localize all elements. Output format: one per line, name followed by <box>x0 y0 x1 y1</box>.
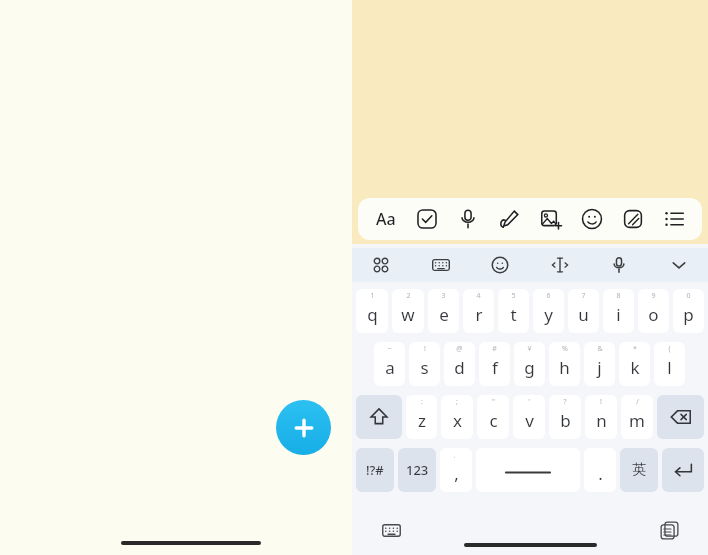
staticText: / <box>636 397 639 407</box>
staticText: o <box>648 303 659 326</box>
button[interactable]: " <box>477 395 509 439</box>
button[interactable]: Voice <box>451 202 485 236</box>
button[interactable]: Shift <box>356 395 402 439</box>
staticText: . <box>598 462 603 485</box>
staticText: v <box>525 409 534 432</box>
button[interactable]: List <box>657 202 691 236</box>
button[interactable]: : <box>406 395 437 439</box>
button[interactable]: / <box>621 395 653 439</box>
button[interactable]: Add <box>276 400 331 455</box>
staticText: a <box>385 356 395 379</box>
staticText: & <box>597 344 603 354</box>
button[interactable]: 7 <box>568 289 599 333</box>
button[interactable]: Draw <box>492 202 526 236</box>
button[interactable]: Emoji <box>575 202 609 236</box>
button[interactable]: Voice input <box>604 250 634 280</box>
staticText: # <box>492 344 497 354</box>
staticText: p <box>683 303 694 326</box>
staticText: m <box>629 409 645 432</box>
staticText: ! <box>600 397 602 407</box>
button[interactable]: ! <box>585 395 617 439</box>
staticText: w <box>401 303 415 326</box>
button[interactable]: Clipboard <box>654 515 684 545</box>
button[interactable]: 0 <box>673 289 704 333</box>
button[interactable]: Photo <box>534 202 568 236</box>
staticText: n <box>596 409 607 432</box>
staticText: @ <box>456 344 463 354</box>
button[interactable]: ; <box>441 395 473 439</box>
staticText: ' <box>528 397 530 407</box>
staticText: 9 <box>651 291 656 301</box>
button[interactable]: % <box>549 342 580 386</box>
button[interactable]: Apps <box>366 250 396 280</box>
button[interactable]: * <box>619 342 650 386</box>
staticText: x <box>453 409 462 432</box>
button[interactable]: 6 <box>533 289 564 333</box>
staticText: e <box>439 303 449 326</box>
button[interactable]: ? <box>549 395 581 439</box>
button[interactable]: . <box>584 448 616 492</box>
button[interactable]: Hide keyboard <box>664 250 694 280</box>
staticText: 英 <box>632 461 646 479</box>
staticText: 5 <box>511 291 516 301</box>
button[interactable]: Space <box>476 448 580 492</box>
staticText: t <box>510 303 517 326</box>
button[interactable]: 英 <box>620 448 658 492</box>
staticText: ! <box>424 344 426 354</box>
button[interactable]: Keyboard layout <box>426 250 456 280</box>
button[interactable]: 2 <box>392 289 424 333</box>
button[interactable]: !?# <box>356 448 394 492</box>
staticText: Aa <box>376 208 396 230</box>
staticText: q <box>367 303 378 326</box>
button[interactable]: 4 <box>463 289 494 333</box>
staticText: 2 <box>406 291 411 301</box>
button[interactable]: Checklist <box>410 202 444 236</box>
staticText: d <box>454 356 465 379</box>
staticText: " <box>492 397 495 407</box>
button[interactable]: ' <box>513 395 545 439</box>
button[interactable]: 123 <box>398 448 436 492</box>
button[interactable]: & <box>584 342 615 386</box>
button[interactable]: 、 <box>440 448 472 492</box>
button[interactable]: Text edit <box>545 250 575 280</box>
button[interactable]: Enter <box>662 448 704 492</box>
staticText: f <box>492 356 498 379</box>
staticText: 4 <box>476 291 481 301</box>
staticText: z <box>418 409 426 432</box>
staticText: ; <box>456 397 458 407</box>
staticText: u <box>578 303 589 326</box>
button[interactable]: 3 <box>428 289 459 333</box>
button[interactable]: ! <box>409 342 440 386</box>
staticText: 123 <box>406 461 429 479</box>
staticText: l <box>667 356 672 379</box>
staticText: s <box>420 356 429 379</box>
staticText: r <box>475 303 483 326</box>
staticText: 8 <box>616 291 621 301</box>
staticText: ¥ <box>527 344 532 354</box>
button[interactable]: 1 <box>356 289 388 333</box>
staticText: c <box>489 409 498 432</box>
staticText: y <box>544 303 553 326</box>
staticText: 7 <box>581 291 586 301</box>
staticText: ~ <box>387 344 392 354</box>
button[interactable]: ~ <box>374 342 405 386</box>
button[interactable]: # <box>479 342 510 386</box>
staticText: ( <box>668 344 671 354</box>
staticText: h <box>559 356 570 379</box>
button[interactable]: Format text <box>369 202 403 236</box>
button[interactable]: Backspace <box>657 395 704 439</box>
button[interactable]: Switch keyboard <box>376 515 406 545</box>
button[interactable]: Sticker <box>616 202 650 236</box>
button[interactable]: Emoji <box>485 250 515 280</box>
button[interactable]: @ <box>444 342 475 386</box>
staticText: 3 <box>441 291 446 301</box>
staticText: % <box>562 344 568 354</box>
staticText: * <box>633 344 637 354</box>
staticText: ? <box>563 397 567 407</box>
staticText: 0 <box>686 291 691 301</box>
button[interactable]: ( <box>654 342 685 386</box>
button[interactable]: 9 <box>638 289 669 333</box>
button[interactable]: 8 <box>603 289 634 333</box>
button[interactable]: ¥ <box>514 342 545 386</box>
button[interactable]: 5 <box>498 289 529 333</box>
